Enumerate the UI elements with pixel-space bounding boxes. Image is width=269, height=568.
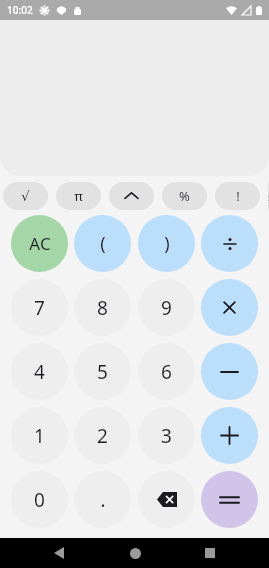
button[interactable]: ! xyxy=(215,182,260,210)
staticText: 9 xyxy=(161,295,172,321)
staticText: 4 xyxy=(34,359,45,385)
staticText: ( xyxy=(100,231,106,256)
staticText: 0 xyxy=(34,487,45,513)
staticText: 2 xyxy=(97,423,108,449)
staticText: ! xyxy=(236,187,240,205)
button[interactable]: 7 xyxy=(11,279,68,336)
staticText: AC xyxy=(29,232,51,255)
staticText: 3 xyxy=(161,423,172,449)
staticText: s xyxy=(268,189,269,204)
staticText: . xyxy=(100,487,106,513)
button[interactable]: . xyxy=(74,471,131,528)
staticText: π xyxy=(74,187,83,205)
button[interactable]: Recent apps xyxy=(193,538,227,568)
button[interactable]: s xyxy=(268,182,269,210)
button[interactable] xyxy=(201,215,258,272)
button[interactable]: 1 xyxy=(11,407,68,464)
staticText: √ xyxy=(21,189,30,204)
button[interactable] xyxy=(201,343,258,400)
staticText: 7 xyxy=(34,295,45,321)
button[interactable]: 5 xyxy=(74,343,131,400)
staticText: ) xyxy=(164,231,170,256)
button[interactable]: Back xyxy=(42,538,76,568)
staticText: 1 xyxy=(34,423,45,449)
button[interactable]: 9 xyxy=(138,279,195,336)
button[interactable]: 2 xyxy=(74,407,131,464)
staticText: 8 xyxy=(97,295,108,321)
button[interactable] xyxy=(201,471,258,528)
button[interactable]: 8 xyxy=(74,279,131,336)
button[interactable]: Backspace xyxy=(138,471,195,528)
button[interactable]: π xyxy=(56,182,101,210)
staticText: 6 xyxy=(161,359,172,385)
button[interactable]: 0 xyxy=(11,471,68,528)
button[interactable]: 6 xyxy=(138,343,195,400)
button[interactable]: AC xyxy=(11,215,68,272)
button[interactable]: √ xyxy=(3,182,48,210)
button[interactable]: 3 xyxy=(138,407,195,464)
staticText: 5 xyxy=(97,359,108,385)
button[interactable]: ) xyxy=(138,215,195,272)
button[interactable]: ( xyxy=(74,215,131,272)
button[interactable]: % xyxy=(162,182,207,210)
staticText: 10:02 xyxy=(7,3,33,17)
button[interactable] xyxy=(201,407,258,464)
button[interactable] xyxy=(109,182,154,210)
button[interactable]: Home xyxy=(118,538,152,568)
button[interactable] xyxy=(201,279,258,336)
button[interactable]: 4 xyxy=(11,343,68,400)
staticText: % xyxy=(179,187,190,205)
